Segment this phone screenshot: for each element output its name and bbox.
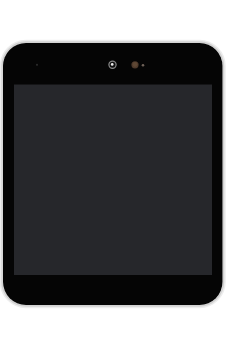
button[interactable]: Tablet device illustration — [0, 0, 227, 350]
